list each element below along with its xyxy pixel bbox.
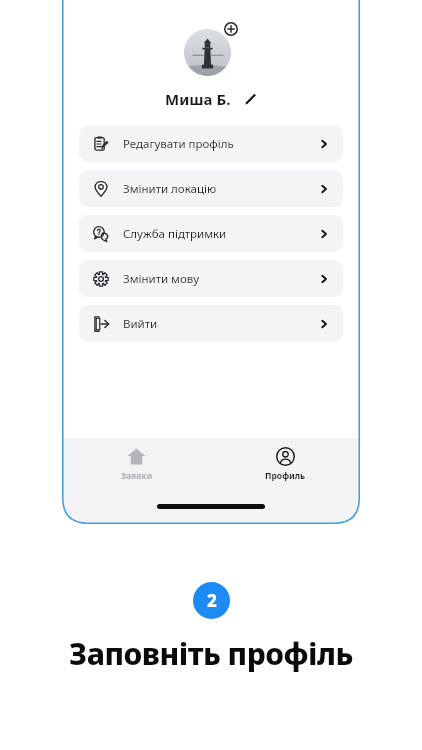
staticText: Профиль xyxy=(265,470,306,482)
staticText: Служба підтримки xyxy=(123,226,227,242)
button[interactable]: Миша Б. xyxy=(62,89,360,109)
button[interactable]: Редагувати профіль xyxy=(79,125,343,162)
staticText: Заявки xyxy=(121,470,153,482)
staticText: Вийти xyxy=(123,316,158,332)
staticText: 2 xyxy=(207,589,217,612)
other: Edit name xyxy=(244,93,257,106)
button[interactable]: Add photo xyxy=(224,22,238,36)
button[interactable]: Змінити локацію xyxy=(79,170,343,207)
button[interactable]: Profile photo xyxy=(184,29,231,76)
staticText: Заповніть профіль xyxy=(0,633,422,674)
button[interactable]: Профиль xyxy=(211,447,360,482)
staticText: Миша Б. xyxy=(165,89,231,109)
button[interactable]: Заявки xyxy=(62,447,211,482)
button[interactable]: Служба підтримки xyxy=(79,215,343,252)
staticText: Змінити локацію xyxy=(123,181,217,197)
button[interactable]: Вийти xyxy=(79,305,343,342)
button[interactable]: Змінити мову xyxy=(79,260,343,297)
staticText: Редагувати профіль xyxy=(123,136,234,152)
staticText: Змінити мову xyxy=(123,271,200,287)
